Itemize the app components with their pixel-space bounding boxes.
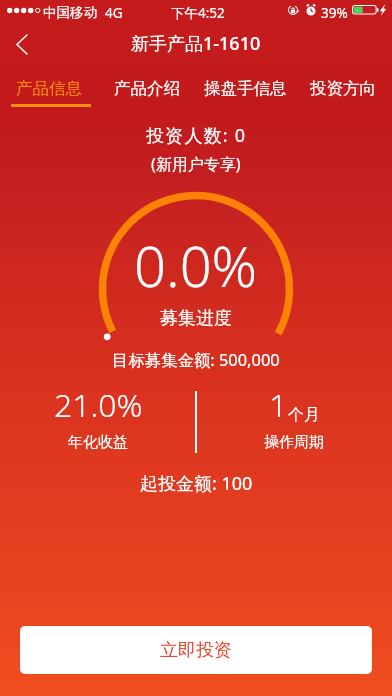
staticText: 下午4:52 xyxy=(171,4,225,22)
button[interactable]: Back xyxy=(0,22,44,66)
staticText: 21.0% xyxy=(54,383,143,427)
staticText: 产品介绍 xyxy=(114,78,180,99)
staticText: 操盘手信息 xyxy=(204,78,287,99)
button[interactable]: 操盘手信息 xyxy=(196,68,294,110)
button[interactable]: 立即投资 xyxy=(20,626,372,674)
staticText: 中国移动 xyxy=(43,4,97,21)
staticText: 0.0% xyxy=(134,227,258,303)
staticText: 投资方向 xyxy=(310,78,376,99)
staticText: 4G xyxy=(105,4,123,22)
staticText: (新用户专享) xyxy=(151,153,241,175)
button[interactable]: 投资方向 xyxy=(294,68,392,110)
staticText: 年化收益 xyxy=(68,433,128,452)
staticText: 产品信息 xyxy=(16,78,82,99)
staticText: 操作周期 xyxy=(264,433,324,452)
staticText: 目标募集金额: 500,000 xyxy=(112,348,280,370)
staticText: 1 xyxy=(269,383,288,427)
staticText: 募集进度 xyxy=(160,307,232,330)
button[interactable]: 产品信息 xyxy=(0,68,98,110)
button[interactable]: 产品介绍 xyxy=(98,68,196,110)
staticText: 投资人数: 0 xyxy=(146,123,247,148)
staticText: 39% xyxy=(321,4,348,22)
staticText: 个月 xyxy=(288,405,320,425)
staticText: 立即投资 xyxy=(160,639,232,662)
staticText: 起投金额: 100 xyxy=(140,471,253,496)
staticText: 新手产品1-1610 xyxy=(131,31,261,56)
